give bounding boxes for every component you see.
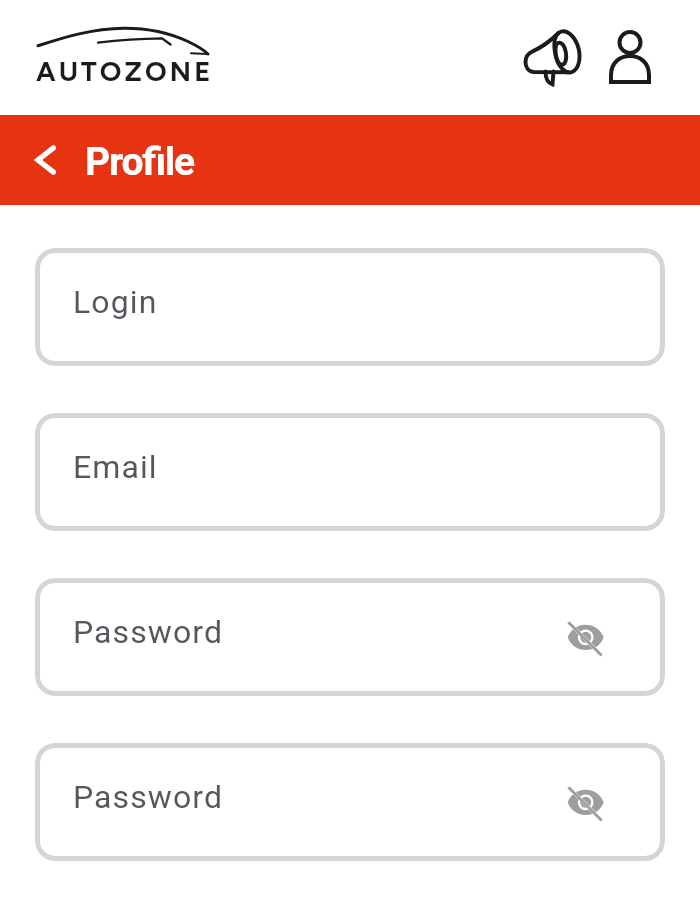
staticText: Password bbox=[73, 613, 224, 651]
button[interactable]: Email bbox=[35, 413, 665, 531]
button[interactable]: Show password bbox=[558, 610, 614, 666]
button[interactable]: Password bbox=[35, 578, 665, 696]
button[interactable]: Deals and offers bbox=[519, 23, 587, 91]
staticText: Profile bbox=[85, 139, 194, 185]
staticText: AUTOZONE bbox=[36, 55, 214, 88]
button[interactable]: Login bbox=[35, 248, 665, 366]
button[interactable]: Account bbox=[596, 23, 664, 91]
button[interactable]: Show password bbox=[558, 775, 614, 831]
button[interactable]: AutoZone bbox=[34, 4, 214, 90]
button[interactable]: Password bbox=[35, 743, 665, 861]
staticText: Login bbox=[73, 283, 158, 321]
staticText: Email bbox=[73, 448, 158, 486]
button[interactable]: Back bbox=[18, 131, 76, 189]
staticText: Password bbox=[73, 778, 224, 816]
